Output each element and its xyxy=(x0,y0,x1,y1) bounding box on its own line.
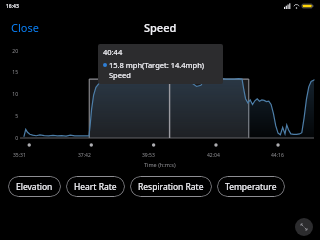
staticText: 5 xyxy=(0,113,18,120)
staticText: Close xyxy=(11,20,39,35)
staticText: 16:43 xyxy=(6,3,19,10)
button[interactable]: Respiration Rate xyxy=(130,176,212,197)
staticText: 35:31 xyxy=(13,152,26,159)
staticText: 37:42 xyxy=(78,152,91,159)
staticText: 42:04 xyxy=(207,152,220,159)
staticText: 20 xyxy=(0,48,18,55)
staticText: 39:53 xyxy=(142,152,155,159)
staticText: Speed xyxy=(109,70,131,80)
button[interactable]: Elevation xyxy=(8,176,61,197)
button[interactable]: Temperature xyxy=(217,176,285,197)
staticText: Heart Rate xyxy=(74,181,117,193)
staticText: Respiration Rate xyxy=(138,181,204,193)
staticText: Time (h:m:s) xyxy=(144,161,176,168)
staticText: 0 xyxy=(0,135,18,142)
staticText: 40:44 xyxy=(103,47,123,57)
staticText: 15 xyxy=(0,69,18,76)
button[interactable]: Heart Rate xyxy=(66,176,125,197)
staticText: Elevation xyxy=(16,181,53,193)
staticText: 15.8 mph(Target: 14.4mph) xyxy=(109,60,205,70)
staticText: 44:16 xyxy=(271,152,284,159)
staticText: Temperature xyxy=(225,181,277,193)
staticText: 10 xyxy=(0,91,18,98)
button[interactable]: Expand chart xyxy=(295,218,313,236)
staticText: Speed xyxy=(144,20,177,35)
button[interactable]: Close xyxy=(8,17,42,38)
